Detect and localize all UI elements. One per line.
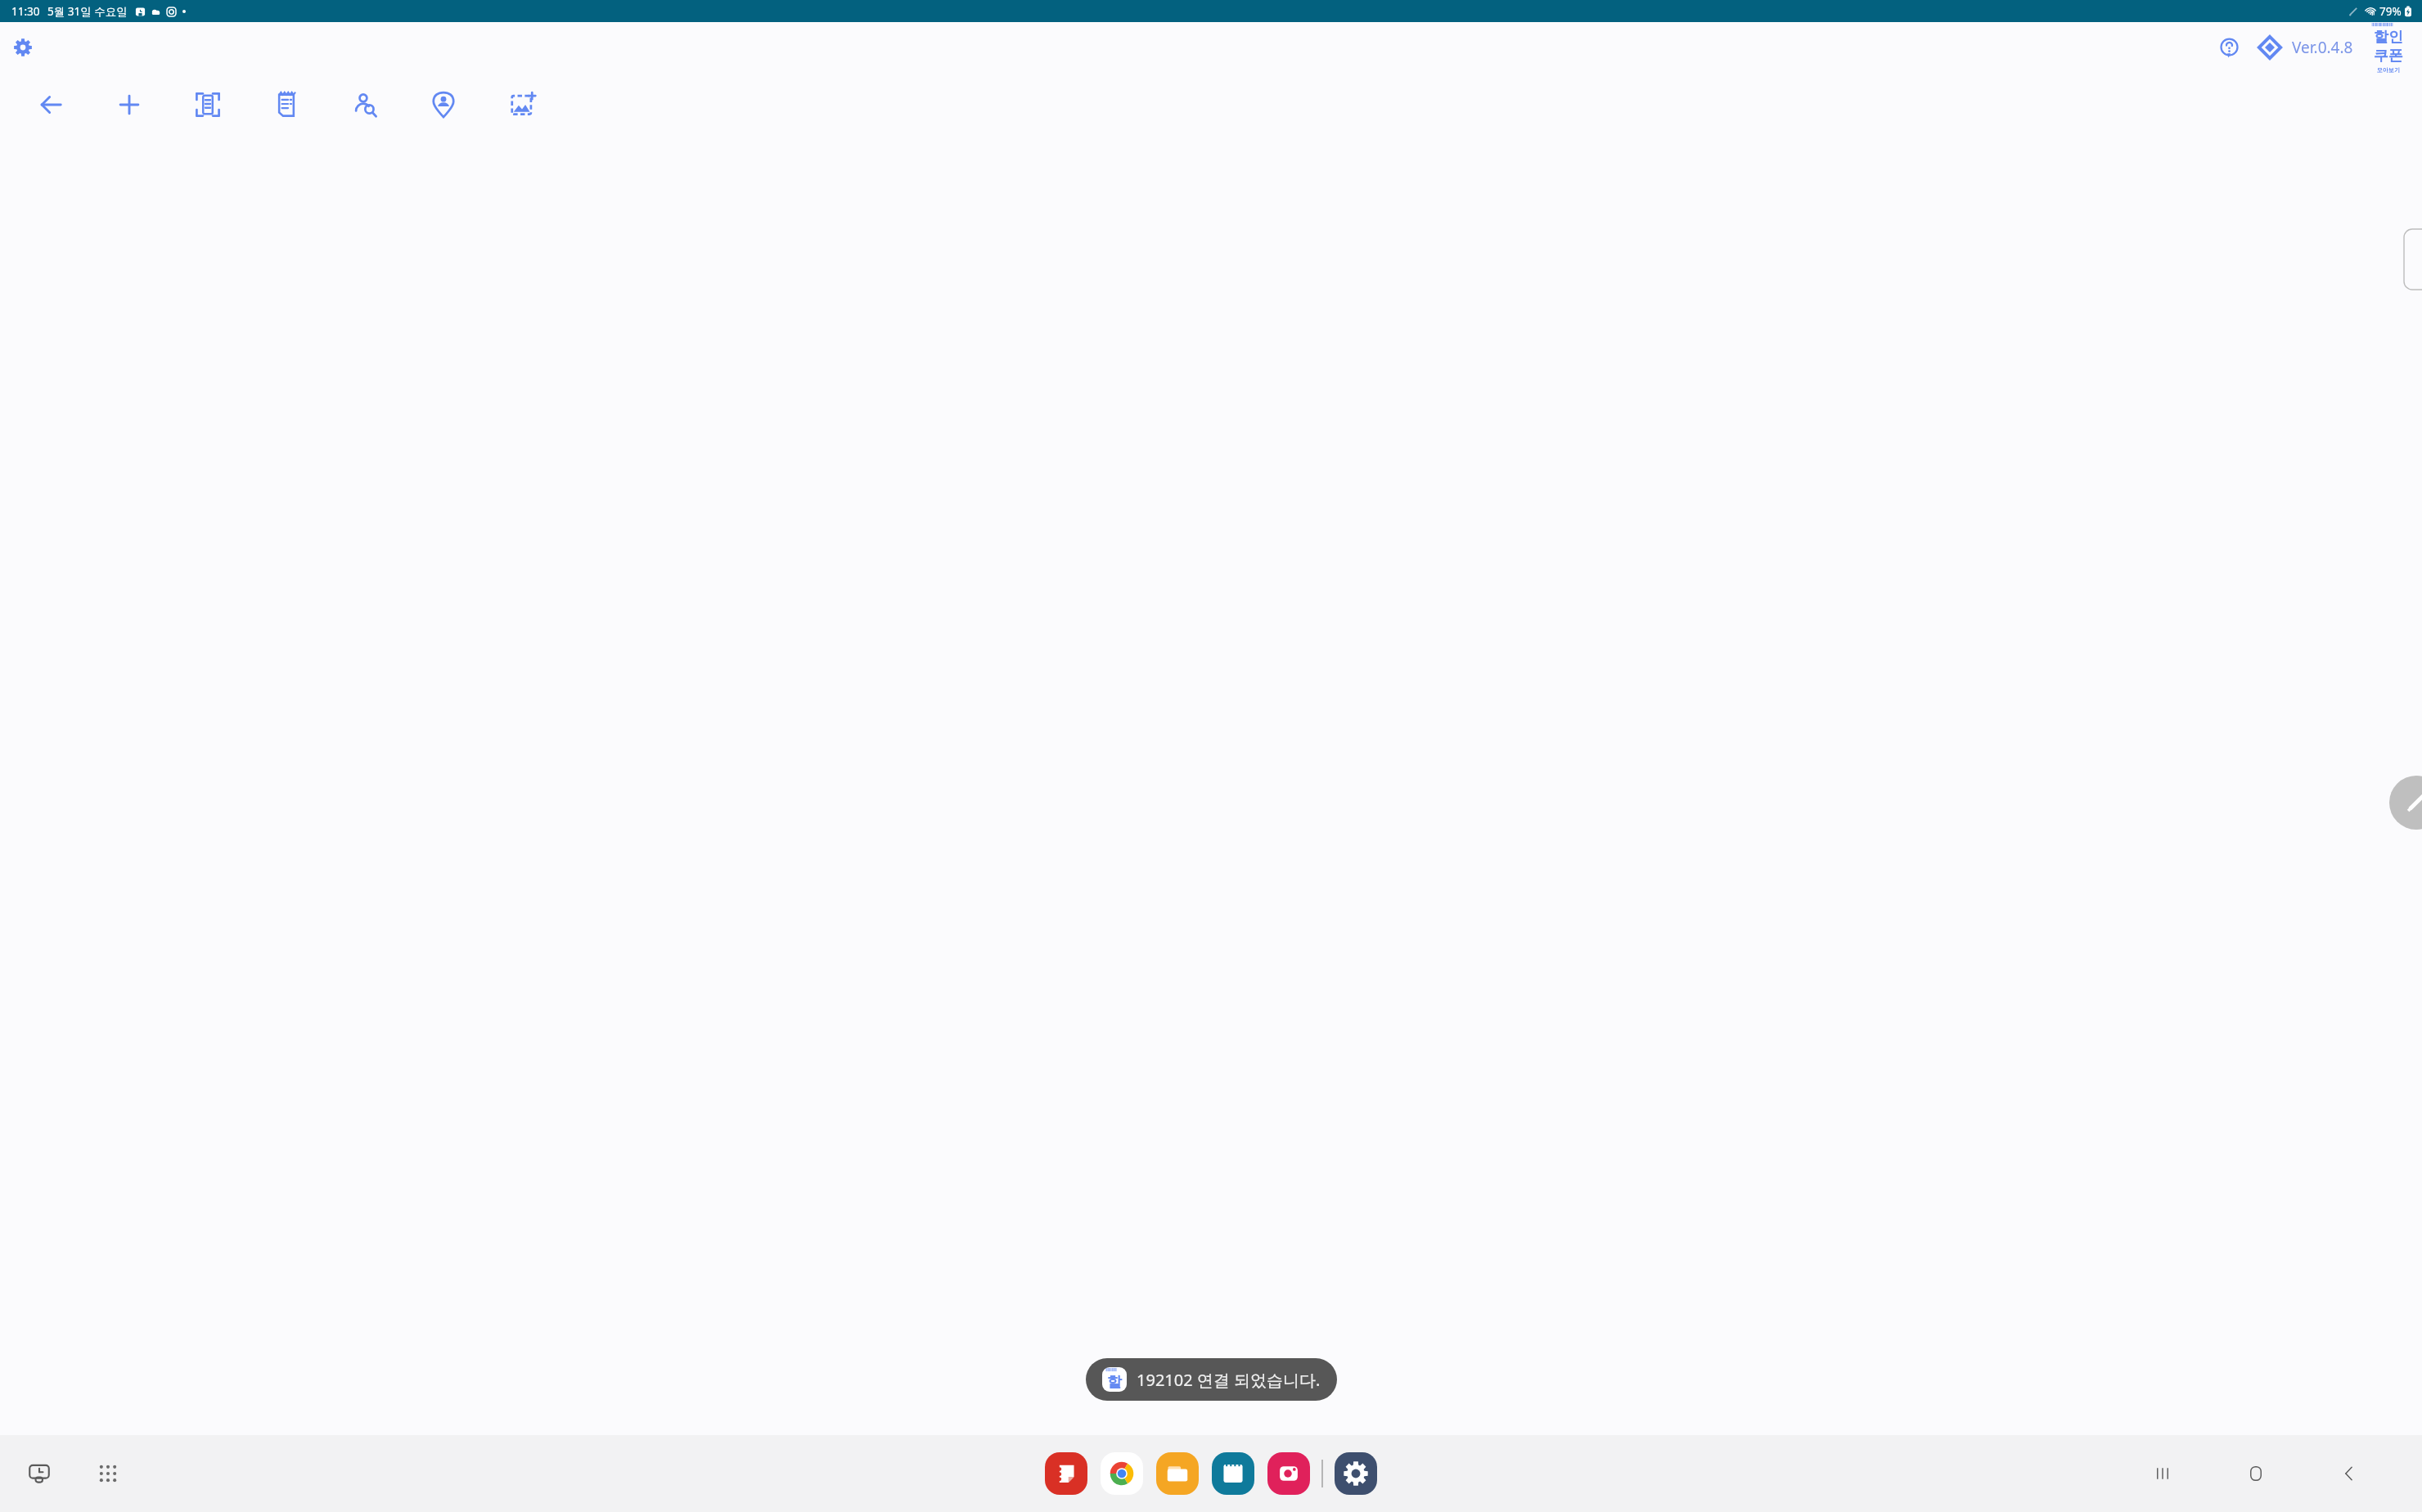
button[interactable]: Chrome: [1101, 1452, 1143, 1495]
button[interactable]: Back: [2325, 1450, 2373, 1497]
staticText: 모아보기: [2377, 66, 2400, 73]
staticText: 192102 연결 되었습니다.: [1137, 1369, 1321, 1391]
button[interactable]: Scan document: [169, 73, 247, 137]
staticText: 79%: [2379, 4, 2402, 19]
button[interactable]: App logo: [2253, 31, 2286, 64]
button[interactable]: Settings: [7, 31, 39, 64]
button[interactable]: 할인쿠폰 모아보기: [2370, 22, 2407, 73]
button[interactable]: Add: [90, 73, 169, 137]
button[interactable]: Edit: [2389, 776, 2422, 830]
staticText: 5월 31일 수요일: [47, 4, 128, 19]
button[interactable]: Search person: [326, 73, 404, 137]
button[interactable]: Receipt: [247, 73, 326, 137]
button[interactable]: Recents: [2139, 1450, 2186, 1497]
button[interactable]: Instagram: [1267, 1452, 1310, 1495]
button[interactable]: My Files: [1156, 1452, 1199, 1495]
button[interactable]: Home: [2232, 1450, 2280, 1497]
button[interactable]: Calendar: [1212, 1452, 1254, 1495]
button[interactable]: Settings: [1335, 1452, 1377, 1495]
button[interactable]: Samsung Notes: [1045, 1452, 1087, 1495]
staticText: 할인: [2374, 28, 2403, 47]
button[interactable]: Help: [2213, 32, 2245, 64]
staticText: 11:30: [11, 4, 40, 19]
button[interactable]: Back: [11, 73, 90, 137]
staticText: Ver.0.4.8: [2292, 37, 2353, 58]
staticText: 할인: [1105, 1373, 1124, 1392]
button[interactable]: Apps: [85, 1451, 131, 1496]
button[interactable]: Add image: [483, 73, 561, 137]
button[interactable]: Screen time: [16, 1451, 62, 1496]
staticText: 쿠폰: [2374, 47, 2403, 65]
button[interactable]: Location: [404, 73, 483, 137]
